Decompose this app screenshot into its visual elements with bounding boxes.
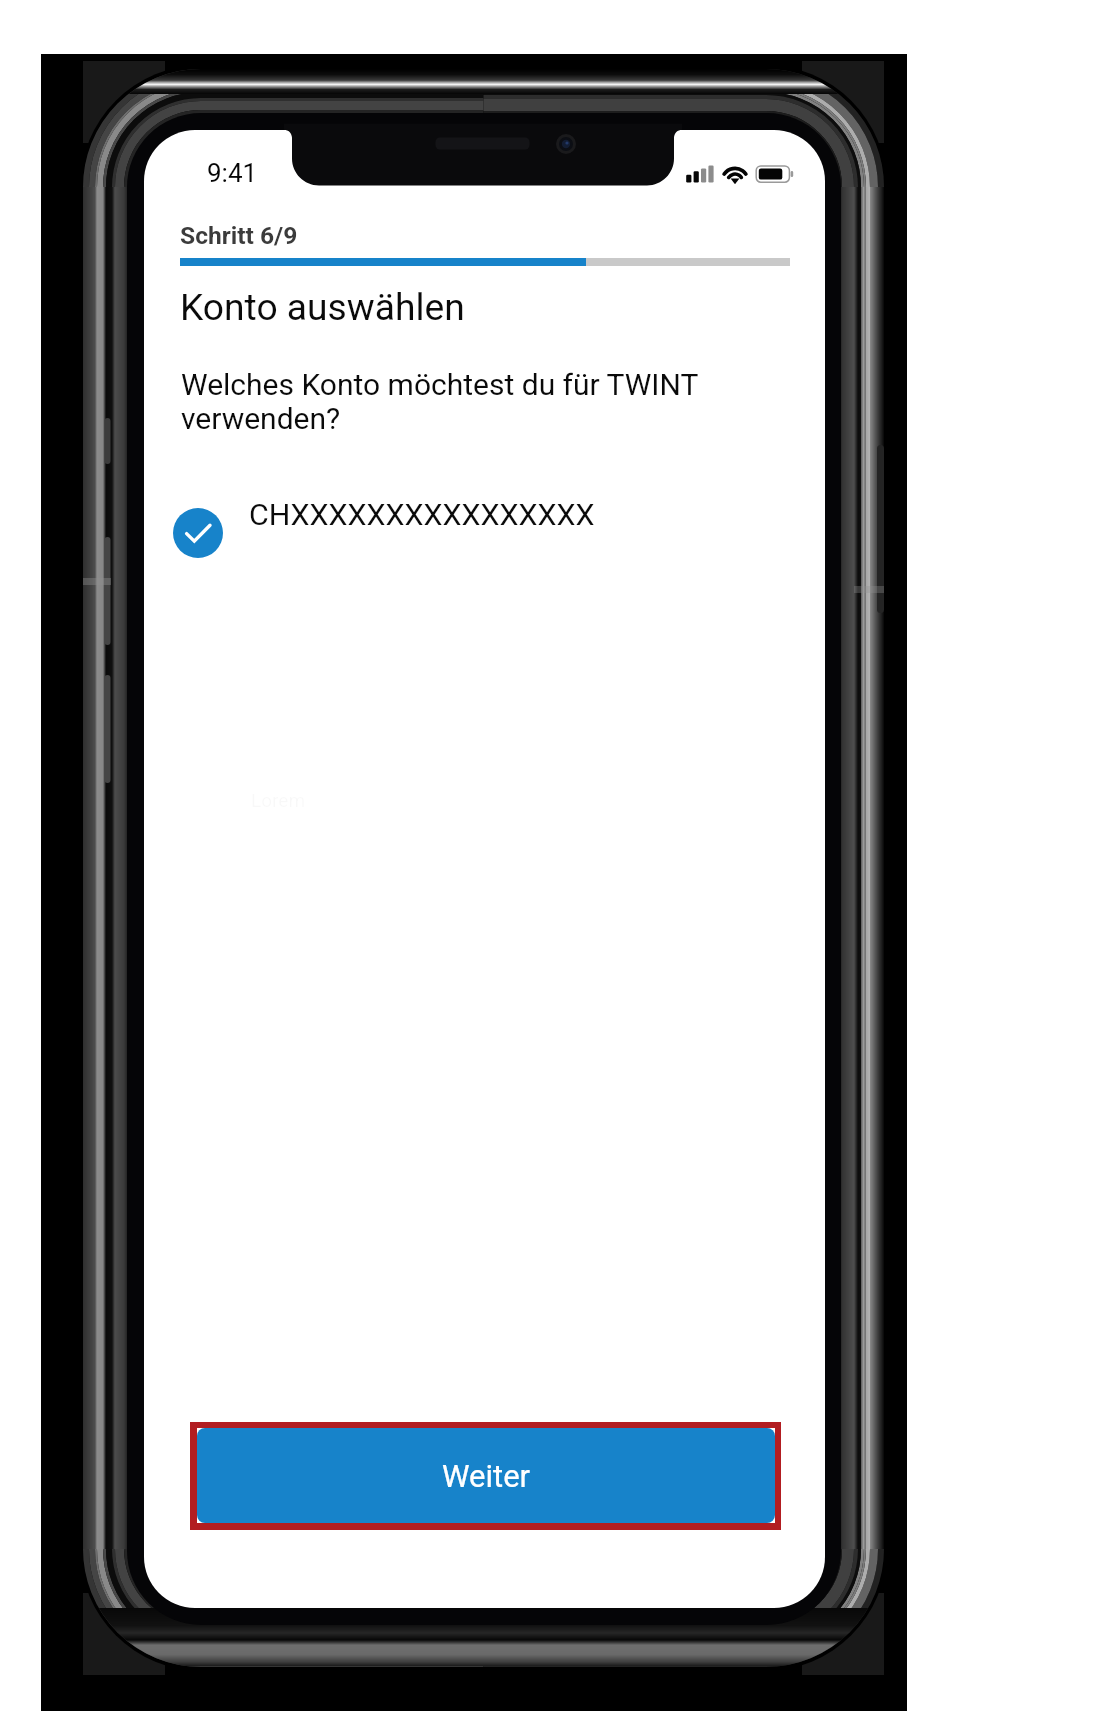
other: Konto ausgewählt — [173, 508, 223, 558]
staticText: CHXXXXXXXXXXXXXXXX — [249, 497, 595, 533]
staticText: 9:41 — [207, 158, 258, 188]
staticText: Weiter — [442, 1458, 531, 1494]
staticText: Welches Konto möchtest du für TWINT verw… — [181, 367, 699, 436]
button[interactable]: Konto ausgewählt — [173, 503, 598, 559]
staticText: Konto auswählen — [180, 285, 465, 329]
button[interactable]: Weiter — [197, 1428, 775, 1523]
staticText: Schritt 6/9 — [180, 221, 298, 250]
